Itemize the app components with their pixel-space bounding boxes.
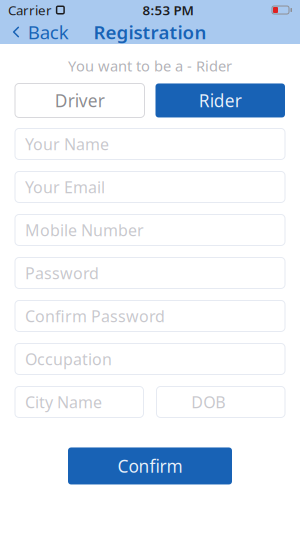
staticText: Mobile Number <box>25 219 144 241</box>
staticText: Your Name <box>25 133 109 155</box>
staticText: 8:53 PM <box>143 1 194 19</box>
staticText: DOB <box>191 391 225 413</box>
staticText: City Name <box>25 391 102 413</box>
staticText: Confirm Password <box>25 305 165 327</box>
button[interactable]: Confirm <box>68 447 232 484</box>
button[interactable]: Rider <box>155 83 285 117</box>
button[interactable]: Back <box>0 20 77 44</box>
staticText: Driver <box>55 89 105 112</box>
staticText: Back <box>28 20 69 44</box>
staticText: Confirm <box>117 454 182 477</box>
staticText: Carrier <box>8 1 52 19</box>
staticText: Occupation <box>25 348 112 370</box>
button[interactable]: Driver <box>15 83 144 117</box>
staticText: Your Email <box>25 176 105 198</box>
staticText: Rider <box>199 89 242 112</box>
staticText: Registration <box>93 20 206 44</box>
staticText: You want to be a - Rider <box>68 56 232 75</box>
staticText: Password <box>25 262 99 284</box>
